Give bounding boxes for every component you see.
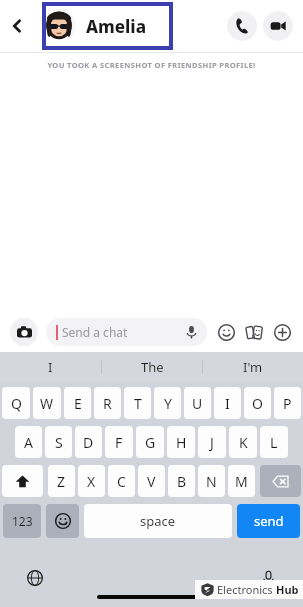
button[interactable]: I — [0, 352, 101, 382]
staticText: C — [117, 472, 126, 491]
button[interactable]: Amelia — [34, 0, 227, 52]
staticText: Amelia — [86, 15, 147, 38]
staticText: send — [254, 512, 284, 530]
button[interactable]: U — [184, 387, 211, 419]
button[interactable]: S — [45, 426, 72, 458]
button[interactable]: T — [124, 387, 151, 419]
button[interactable]: M — [228, 465, 255, 497]
button[interactable]: D — [75, 426, 102, 458]
button[interactable]: Voice call — [227, 11, 257, 41]
button[interactable]: Back — [0, 0, 34, 52]
button[interactable]: Camera — [10, 318, 38, 346]
staticText: Q — [11, 394, 22, 413]
staticText: N — [206, 472, 217, 491]
button[interactable]: I'm — [203, 352, 303, 382]
button[interactable]: The — [102, 352, 202, 382]
button[interactable]: X — [78, 465, 105, 497]
button[interactable]: J — [198, 426, 226, 458]
button[interactable]: Emoji keyboard — [46, 504, 79, 538]
button[interactable]: Send a chat — [46, 318, 207, 346]
button[interactable]: V — [138, 465, 165, 497]
button[interactable]: Video call — [263, 11, 293, 41]
button[interactable]: Q — [2, 387, 30, 419]
staticText: Hub — [276, 582, 299, 597]
button[interactable]: Dictation — [255, 565, 281, 591]
staticText: O — [252, 394, 263, 413]
button[interactable]: Backspace — [260, 465, 301, 497]
staticText: 123 — [12, 513, 33, 529]
staticText: Y — [164, 394, 172, 413]
staticText: YOU TOOK A SCREENSHOT OF FRIENDSHIP PROF… — [47, 60, 256, 70]
button[interactable]: P — [274, 387, 301, 419]
button[interactable]: E — [64, 387, 91, 419]
button[interactable]: L — [260, 426, 288, 458]
button[interactable]: Shift — [2, 465, 43, 497]
staticText: J — [210, 433, 214, 452]
staticText: P — [283, 394, 292, 413]
button[interactable]: Emoji — [213, 319, 239, 345]
staticText: H — [176, 433, 187, 452]
staticText: K — [239, 433, 248, 452]
staticText: G — [145, 433, 156, 452]
button[interactable]: O — [244, 387, 271, 419]
button[interactable]: F — [105, 426, 133, 458]
button[interactable]: N — [198, 465, 225, 497]
button[interactable]: R — [94, 387, 121, 419]
staticText: M — [235, 472, 248, 491]
staticText: T — [134, 394, 142, 413]
button[interactable]: A — [15, 426, 42, 458]
staticText: S — [55, 433, 63, 452]
button[interactable]: send — [237, 504, 300, 538]
staticText: V — [147, 472, 156, 491]
button[interactable]: Switch language — [22, 565, 48, 591]
staticText: R — [103, 394, 112, 413]
staticText: space — [140, 512, 176, 530]
button[interactable]: H — [167, 426, 195, 458]
staticText: Z — [57, 472, 66, 491]
staticText: W — [40, 394, 54, 413]
staticText: X — [87, 472, 96, 491]
staticText: A — [24, 433, 33, 452]
button[interactable]: B — [168, 465, 195, 497]
button[interactable]: 123 — [3, 504, 41, 538]
staticText: L — [270, 433, 278, 452]
button[interactable]: Y — [154, 387, 181, 419]
button[interactable]: W — [33, 387, 61, 419]
button[interactable]: G — [136, 426, 164, 458]
staticText: F — [115, 433, 123, 452]
staticText: I'm — [243, 358, 263, 376]
button[interactable]: Stickers — [241, 319, 267, 345]
button[interactable]: I — [214, 387, 241, 419]
button[interactable]: Voice note — [179, 320, 203, 344]
staticText: I — [225, 394, 230, 413]
staticText: D — [83, 433, 94, 452]
button[interactable]: C — [108, 465, 135, 497]
staticText: I — [48, 358, 53, 376]
staticText: The — [141, 358, 164, 376]
staticText: B — [177, 472, 187, 491]
staticText: U — [192, 394, 203, 413]
button[interactable]: K — [229, 426, 257, 458]
staticText: Electronics — [217, 582, 276, 597]
staticText: Send a chat — [62, 324, 128, 340]
button[interactable]: space — [84, 504, 232, 538]
button[interactable]: Z — [48, 465, 75, 497]
button[interactable]: More — [269, 319, 295, 345]
staticText: E — [74, 394, 82, 413]
